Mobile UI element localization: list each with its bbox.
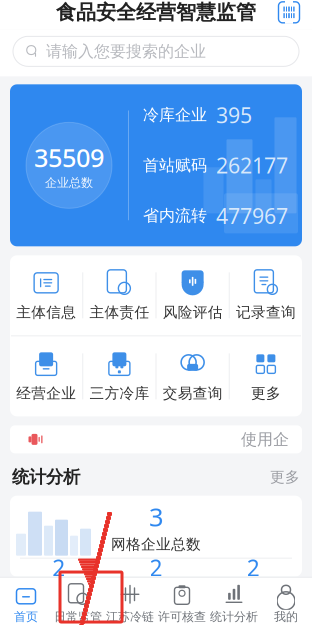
staticText: 我的 (274, 609, 298, 624)
button[interactable]: 主体责任 (83, 255, 155, 335)
staticText: 许可核查 (158, 609, 206, 624)
button[interactable]: 更多 (230, 336, 302, 416)
staticText: 食品安全经营智慧监管 (56, 0, 256, 25)
staticText: 2 (149, 553, 162, 583)
staticText: 395 (216, 101, 252, 129)
staticText: 经营企业 (16, 384, 76, 402)
staticText: 首页 (14, 609, 38, 624)
staticText: 交易查询 (163, 384, 223, 402)
button[interactable]: 风险评估 (156, 255, 229, 335)
button[interactable]: 许可核查 (156, 578, 208, 625)
button[interactable]: 日常监管 (52, 578, 104, 625)
staticText: 三方冷库 (89, 384, 149, 402)
staticText: 首站赋码 (143, 155, 207, 175)
button[interactable]: 请输入您要搜索的企业 (13, 36, 299, 66)
button[interactable]: 三方冷库 (83, 336, 155, 416)
button[interactable]: 统计分析 (208, 578, 260, 625)
staticText: 2 (52, 553, 65, 583)
staticText: 日常监管 (54, 609, 102, 624)
button[interactable]: 我的 (260, 578, 312, 625)
button[interactable]: 江苏冷链 (104, 578, 156, 625)
staticText: 3 (149, 500, 163, 533)
staticText: 更多 (270, 468, 300, 486)
button[interactable]: 扫一扫 (274, 0, 304, 27)
staticText: 主体信息 (16, 303, 76, 321)
staticText: 统计分析 (210, 609, 258, 624)
staticText: 请输入您要搜索的企业 (46, 41, 206, 61)
button[interactable]: 使用企 (10, 425, 302, 453)
staticText: 主体责任 (89, 303, 149, 321)
button[interactable]: 记录查询 (230, 255, 302, 335)
staticText: 冷库企业 (143, 105, 207, 125)
button[interactable]: 交易查询 (156, 336, 229, 416)
staticText: 35509 (34, 141, 104, 174)
staticText: 江苏冷链 (106, 609, 154, 624)
staticText: 262177 (216, 151, 288, 179)
staticText: 风险评估 (163, 303, 223, 321)
staticText: 网格企业总数 (111, 535, 201, 553)
staticText: 记录查询 (236, 303, 296, 321)
staticText: 统计分析 (12, 466, 80, 488)
staticText: 企业总数 (45, 175, 93, 190)
staticText: 使用企 (241, 429, 289, 449)
staticText: 更多 (251, 384, 281, 402)
button[interactable]: 主体信息 (10, 255, 82, 335)
staticText: 477967 (216, 201, 288, 230)
staticText: 2 (247, 553, 260, 583)
button[interactable]: 首页 (0, 578, 52, 625)
button[interactable]: 更多 (270, 468, 300, 486)
staticText: 省内流转 (143, 206, 207, 225)
button[interactable]: 经营企业 (10, 336, 82, 416)
